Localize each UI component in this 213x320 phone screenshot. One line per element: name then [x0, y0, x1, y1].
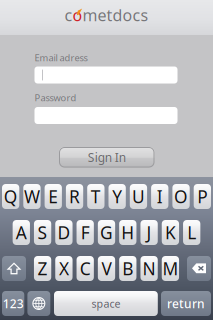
staticText: D	[57, 221, 70, 244]
button[interactable]: C	[77, 256, 94, 281]
staticText: R	[69, 185, 80, 208]
staticText: metdocs	[82, 4, 148, 26]
staticText: O	[174, 185, 188, 208]
button[interactable]: H	[119, 220, 136, 245]
staticText: V	[101, 257, 111, 280]
button[interactable]: N	[140, 256, 158, 281]
button[interactable]: O	[172, 184, 190, 209]
staticText: S	[38, 221, 48, 244]
button[interactable]: K	[162, 220, 179, 245]
staticText: H	[121, 221, 134, 244]
button[interactable]: Z	[34, 256, 51, 281]
staticText: 123	[3, 295, 24, 311]
staticText: K	[165, 221, 176, 244]
staticText: Z	[38, 257, 48, 280]
staticText: U	[132, 185, 145, 208]
button[interactable]: T	[87, 184, 104, 209]
staticText: Password	[34, 91, 76, 104]
staticText: B	[122, 257, 133, 280]
button[interactable]: 123	[2, 291, 24, 316]
button[interactable]: E	[45, 184, 62, 209]
button[interactable]: U	[130, 184, 147, 209]
staticText: F	[81, 221, 90, 244]
staticText: o	[72, 4, 82, 26]
button[interactable]: B	[119, 256, 136, 281]
button[interactable]: V	[98, 256, 115, 281]
button[interactable]: Y	[108, 184, 126, 209]
staticText: c	[64, 4, 72, 26]
staticText: X	[59, 257, 69, 280]
button[interactable]: Delete	[187, 256, 211, 281]
button[interactable]: J	[140, 220, 158, 245]
button[interactable]: F	[77, 220, 94, 245]
staticText: L	[187, 221, 196, 244]
staticText: space	[91, 296, 120, 311]
button[interactable]: R	[66, 184, 83, 209]
staticText: Y	[112, 185, 122, 208]
button[interactable]: Sign In	[59, 147, 154, 167]
staticText: return	[167, 295, 205, 311]
button[interactable]: I	[151, 184, 168, 209]
button[interactable]: D	[55, 220, 72, 245]
button[interactable]: S	[34, 220, 51, 245]
button[interactable]: W	[23, 184, 41, 209]
button[interactable]: A	[13, 220, 30, 245]
button[interactable]: Shift	[2, 256, 26, 281]
staticText: N	[143, 257, 156, 280]
button[interactable]: space	[54, 291, 158, 316]
button[interactable]: Q	[2, 184, 19, 209]
staticText: T	[91, 185, 101, 208]
staticText: Sign In	[88, 149, 126, 165]
button[interactable]: X	[55, 256, 72, 281]
staticText: I	[157, 185, 163, 208]
staticText: J	[147, 221, 152, 244]
staticText: G	[100, 221, 113, 244]
staticText: Q	[4, 185, 18, 208]
button[interactable]: M	[162, 256, 179, 281]
staticText: W	[24, 185, 40, 208]
button[interactable]: L	[183, 220, 200, 245]
button[interactable]: return	[161, 291, 211, 316]
button[interactable]: G	[98, 220, 115, 245]
staticText: P	[197, 185, 207, 208]
button[interactable]: Next keyboard	[27, 291, 50, 316]
staticText: M	[162, 257, 178, 280]
staticText: E	[48, 185, 58, 208]
staticText: Email adress	[34, 51, 87, 64]
staticText: A	[16, 221, 27, 244]
button[interactable]: P	[194, 184, 211, 209]
staticText: C	[80, 257, 91, 280]
